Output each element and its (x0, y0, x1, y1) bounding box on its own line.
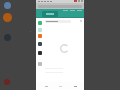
button[interactable]: Profile (70, 83, 80, 89)
button[interactable]: Contact four (4, 79, 10, 85)
button[interactable]: Calendar (38, 51, 42, 55)
button[interactable]: More (38, 62, 42, 66)
button[interactable]: Photos (38, 42, 42, 46)
button[interactable]: Messages (38, 21, 42, 25)
button[interactable]: Home (41, 83, 51, 89)
button[interactable] (45, 20, 71, 23)
button[interactable]: Notes (38, 28, 42, 32)
button[interactable]: Contact one (4, 2, 11, 9)
button[interactable] (42, 11, 58, 17)
button[interactable]: Search (55, 83, 65, 89)
button[interactable]: Contact two (3, 13, 12, 22)
button[interactable]: Contact three (4, 34, 11, 41)
button[interactable]: Drive (38, 34, 42, 38)
